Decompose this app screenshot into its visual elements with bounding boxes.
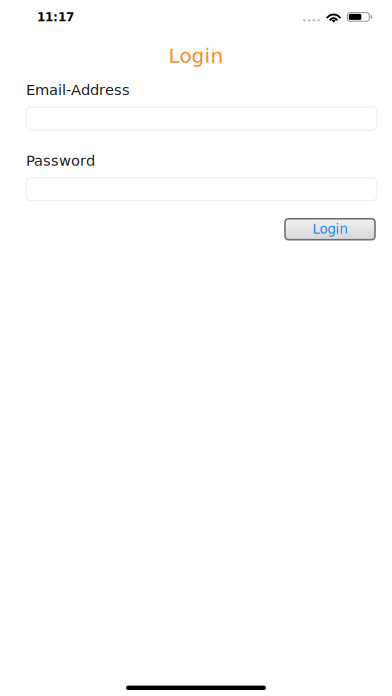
staticText: Login	[312, 221, 347, 237]
staticText: Login	[168, 44, 223, 67]
button[interactable]: Login	[285, 219, 375, 240]
staticText: Email-Address	[26, 81, 130, 98]
button[interactable]: Password	[26, 178, 377, 201]
staticText: Password	[26, 152, 95, 169]
staticText: 11:17	[37, 10, 74, 24]
